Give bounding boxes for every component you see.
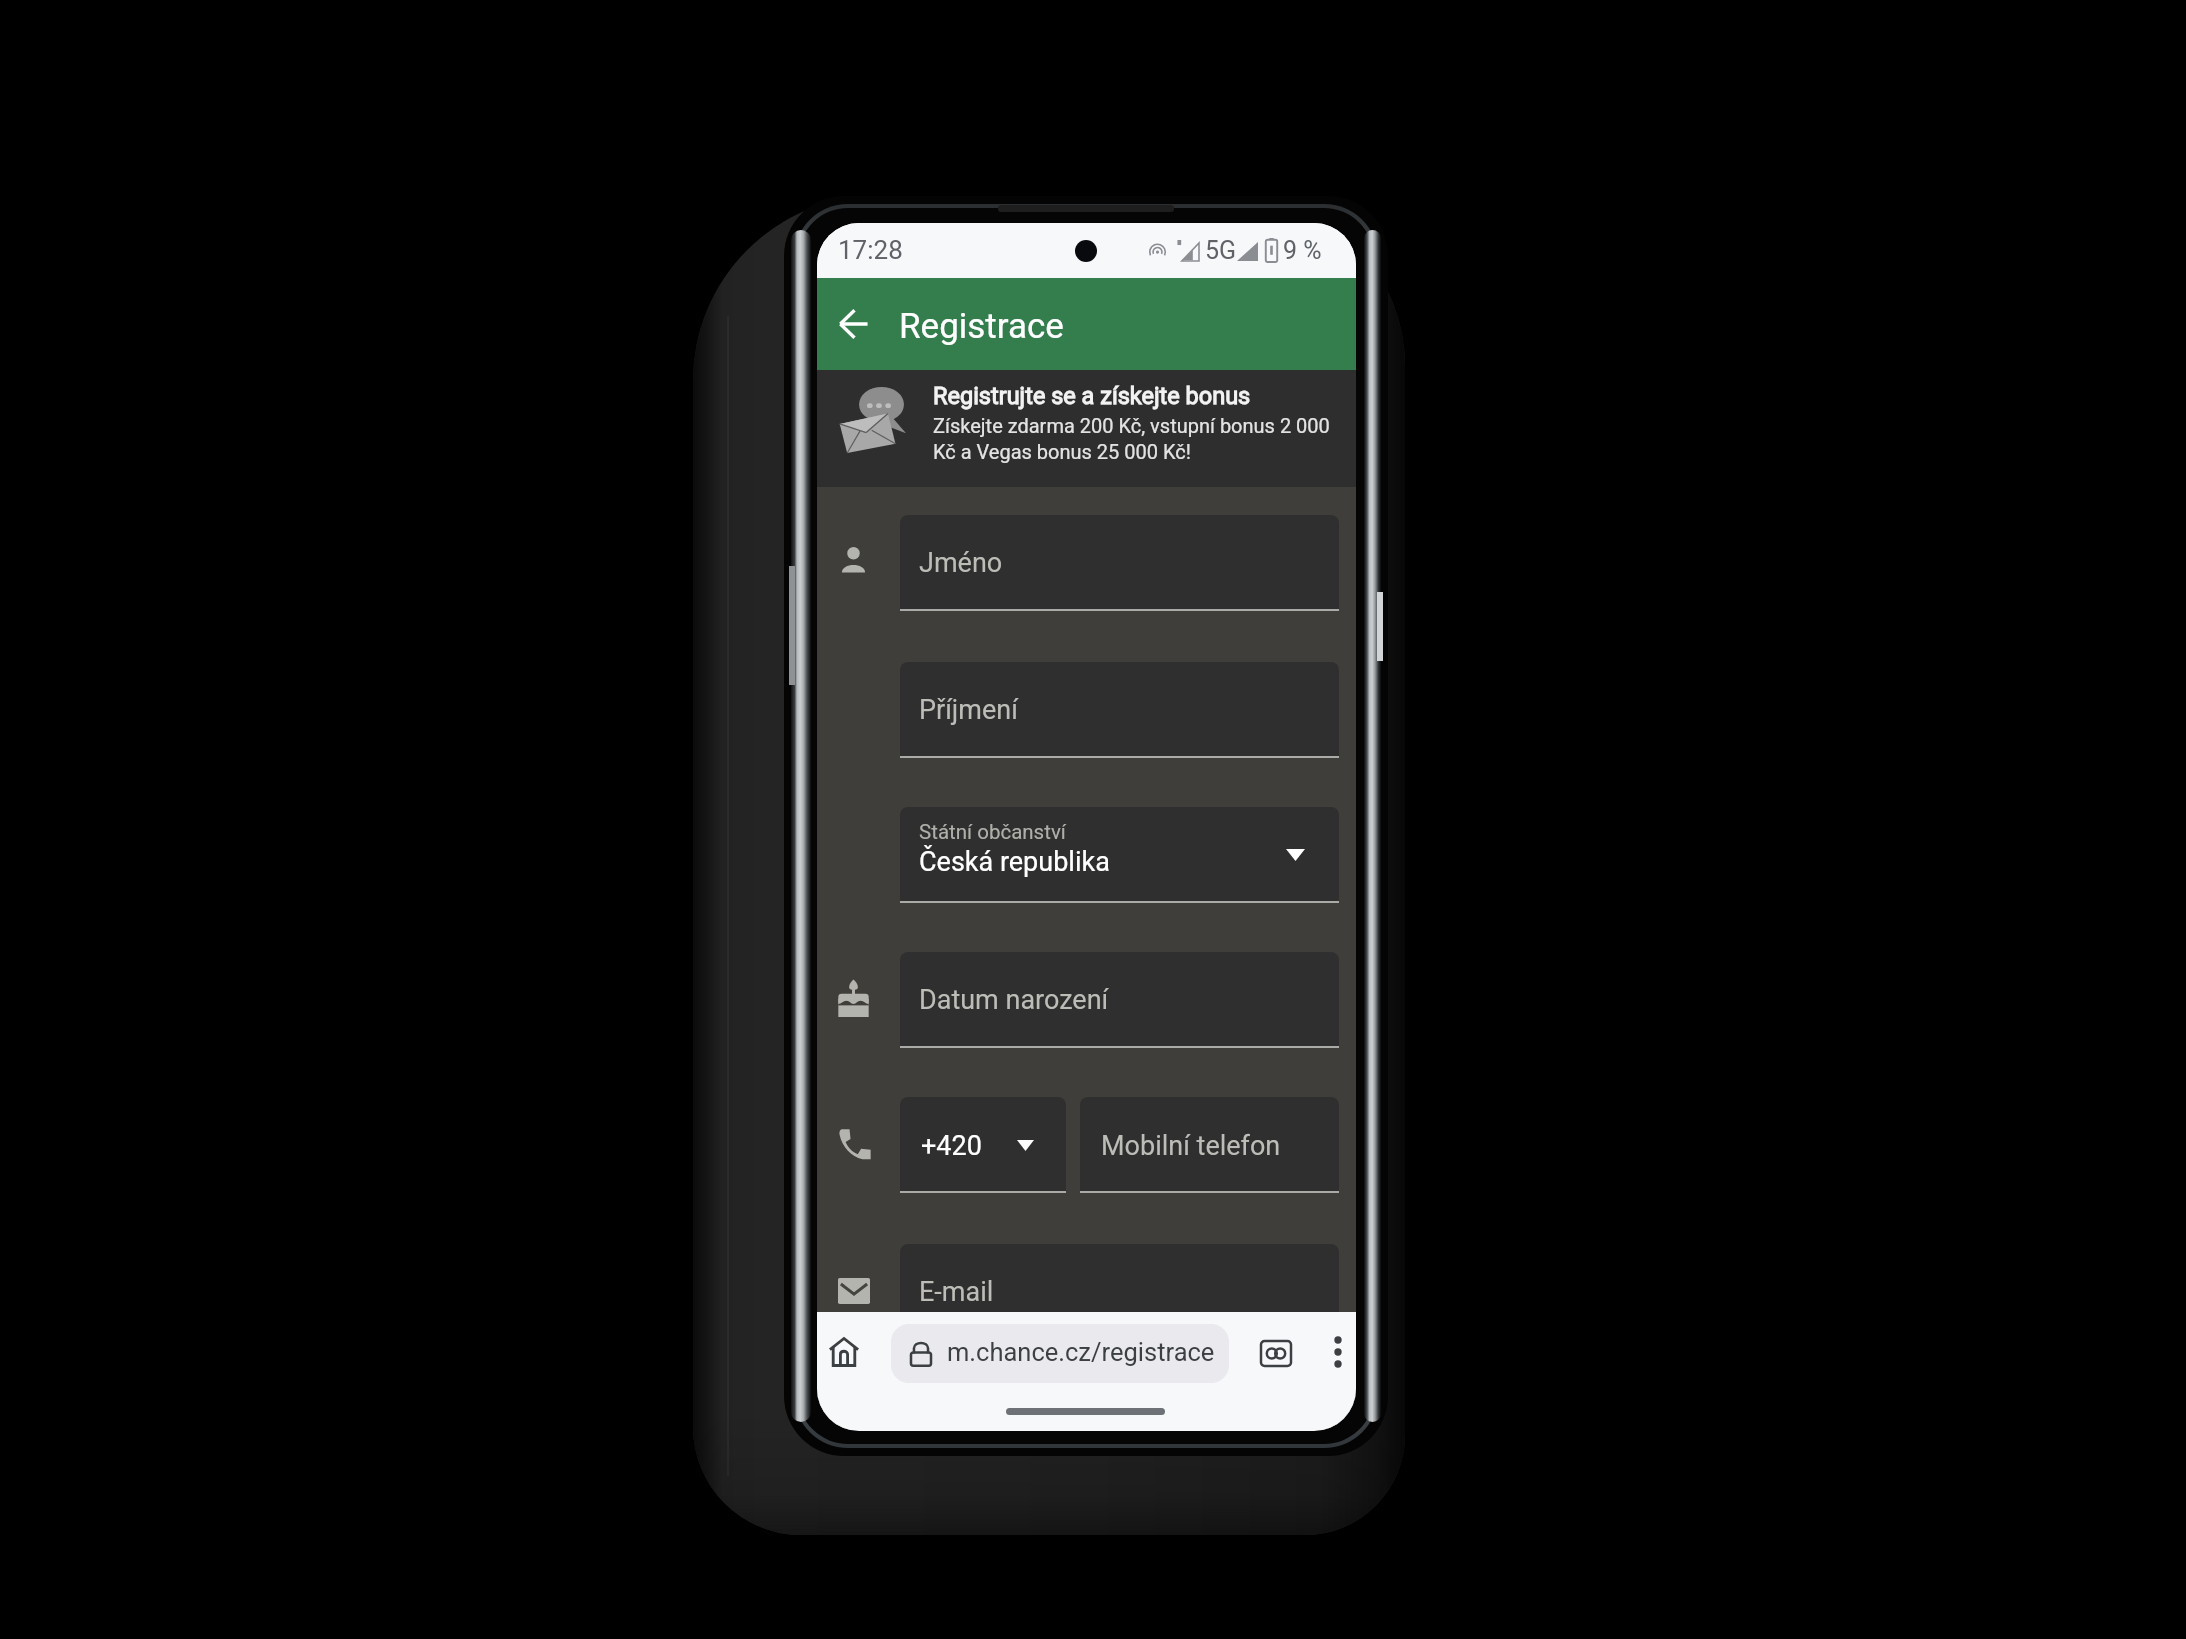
button[interactable]: Home [823, 1331, 865, 1373]
staticText: +420 [921, 1130, 982, 1162]
staticText: m.chance.cz/registrace [947, 1337, 1215, 1367]
button[interactable]: +420 [900, 1097, 1066, 1191]
staticText: Registrace [899, 306, 1064, 347]
staticText: Příjmení [919, 694, 1018, 726]
button[interactable]: m.chance.cz/registrace [891, 1324, 1229, 1383]
staticText: Mobilní telefon [1101, 1130, 1281, 1162]
staticText: 5G [1205, 236, 1237, 265]
staticText: 9 % [1283, 236, 1322, 265]
staticText: Jméno [919, 547, 1003, 579]
button[interactable]: Back [829, 300, 877, 348]
button[interactable]: Registrujte se a získejte bonus [817, 370, 1356, 487]
staticText: Registrujte se a získejte bonus [933, 382, 1251, 410]
button[interactable]: Jméno [900, 515, 1339, 609]
button[interactable]: Mobilní telefon [1080, 1097, 1339, 1191]
button[interactable]: More options [1318, 1332, 1356, 1372]
staticText: Státní občanství [919, 820, 1066, 844]
staticText: Datum narození [919, 984, 1109, 1016]
staticText: Česká republika [919, 846, 1110, 878]
button[interactable]: E-mail [900, 1244, 1339, 1338]
button[interactable]: Státní občanství [900, 807, 1339, 901]
staticText: 17:28 [838, 235, 903, 265]
button[interactable]: Příjmení [900, 662, 1339, 756]
button[interactable]: Datum narození [900, 952, 1339, 1046]
staticText: E-mail [919, 1276, 994, 1308]
button[interactable]: Tabs [1255, 1332, 1297, 1374]
staticText: Získejte zdarma 200 Kč, vstupní bonus 2 … [933, 414, 1330, 464]
